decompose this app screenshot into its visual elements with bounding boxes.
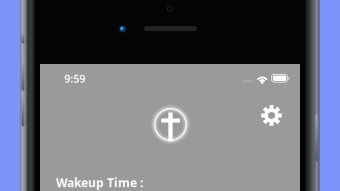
button[interactable]: Settings xyxy=(261,105,282,126)
staticText: Wakeup Time : xyxy=(56,174,143,190)
staticText: 9:59 xyxy=(64,71,85,86)
